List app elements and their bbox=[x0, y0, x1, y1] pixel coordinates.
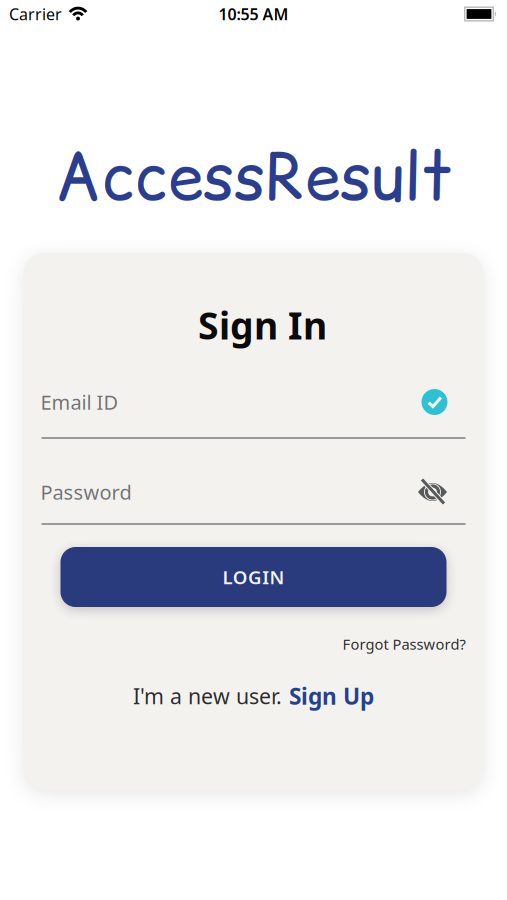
button[interactable]: Forgot Password? bbox=[342, 634, 465, 654]
button[interactable]: LOGIN bbox=[60, 547, 446, 607]
staticText: Password bbox=[40, 479, 131, 505]
staticText: Sign Up bbox=[289, 681, 374, 711]
staticText: Email ID bbox=[40, 389, 118, 415]
staticText: Sign In bbox=[198, 300, 327, 350]
staticText: 10:55 AM bbox=[218, 3, 288, 25]
staticText: Forgot Password? bbox=[342, 634, 465, 654]
staticText: LOGIN bbox=[222, 565, 285, 589]
staticText: I'm a new user. bbox=[133, 682, 282, 710]
button[interactable]: Sign Up bbox=[289, 681, 374, 711]
staticText: Carrier bbox=[9, 3, 62, 25]
button[interactable] bbox=[417, 479, 447, 505]
staticText: AccessResult bbox=[55, 132, 452, 222]
